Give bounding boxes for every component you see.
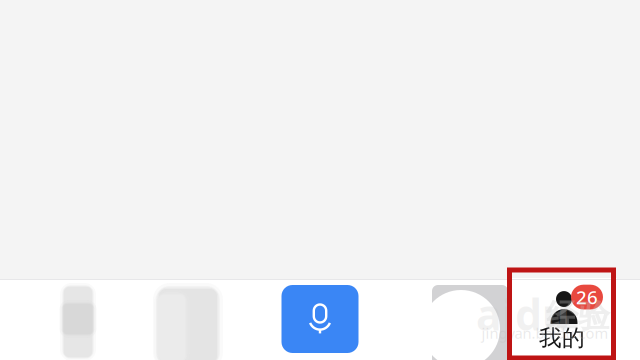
button[interactable]: 26 <box>507 278 617 358</box>
button[interactable]: Tab one <box>14 280 142 360</box>
button[interactable]: Tab two <box>127 280 247 360</box>
staticText: 26 <box>576 285 598 309</box>
staticText: aidu <box>476 286 570 342</box>
button[interactable]: Voice search <box>260 279 380 359</box>
staticText: 经验 <box>546 296 610 336</box>
staticText: jingyan.baidu.com <box>481 323 608 343</box>
staticText: 我的 <box>539 324 585 352</box>
button[interactable]: Tab four <box>410 285 530 360</box>
